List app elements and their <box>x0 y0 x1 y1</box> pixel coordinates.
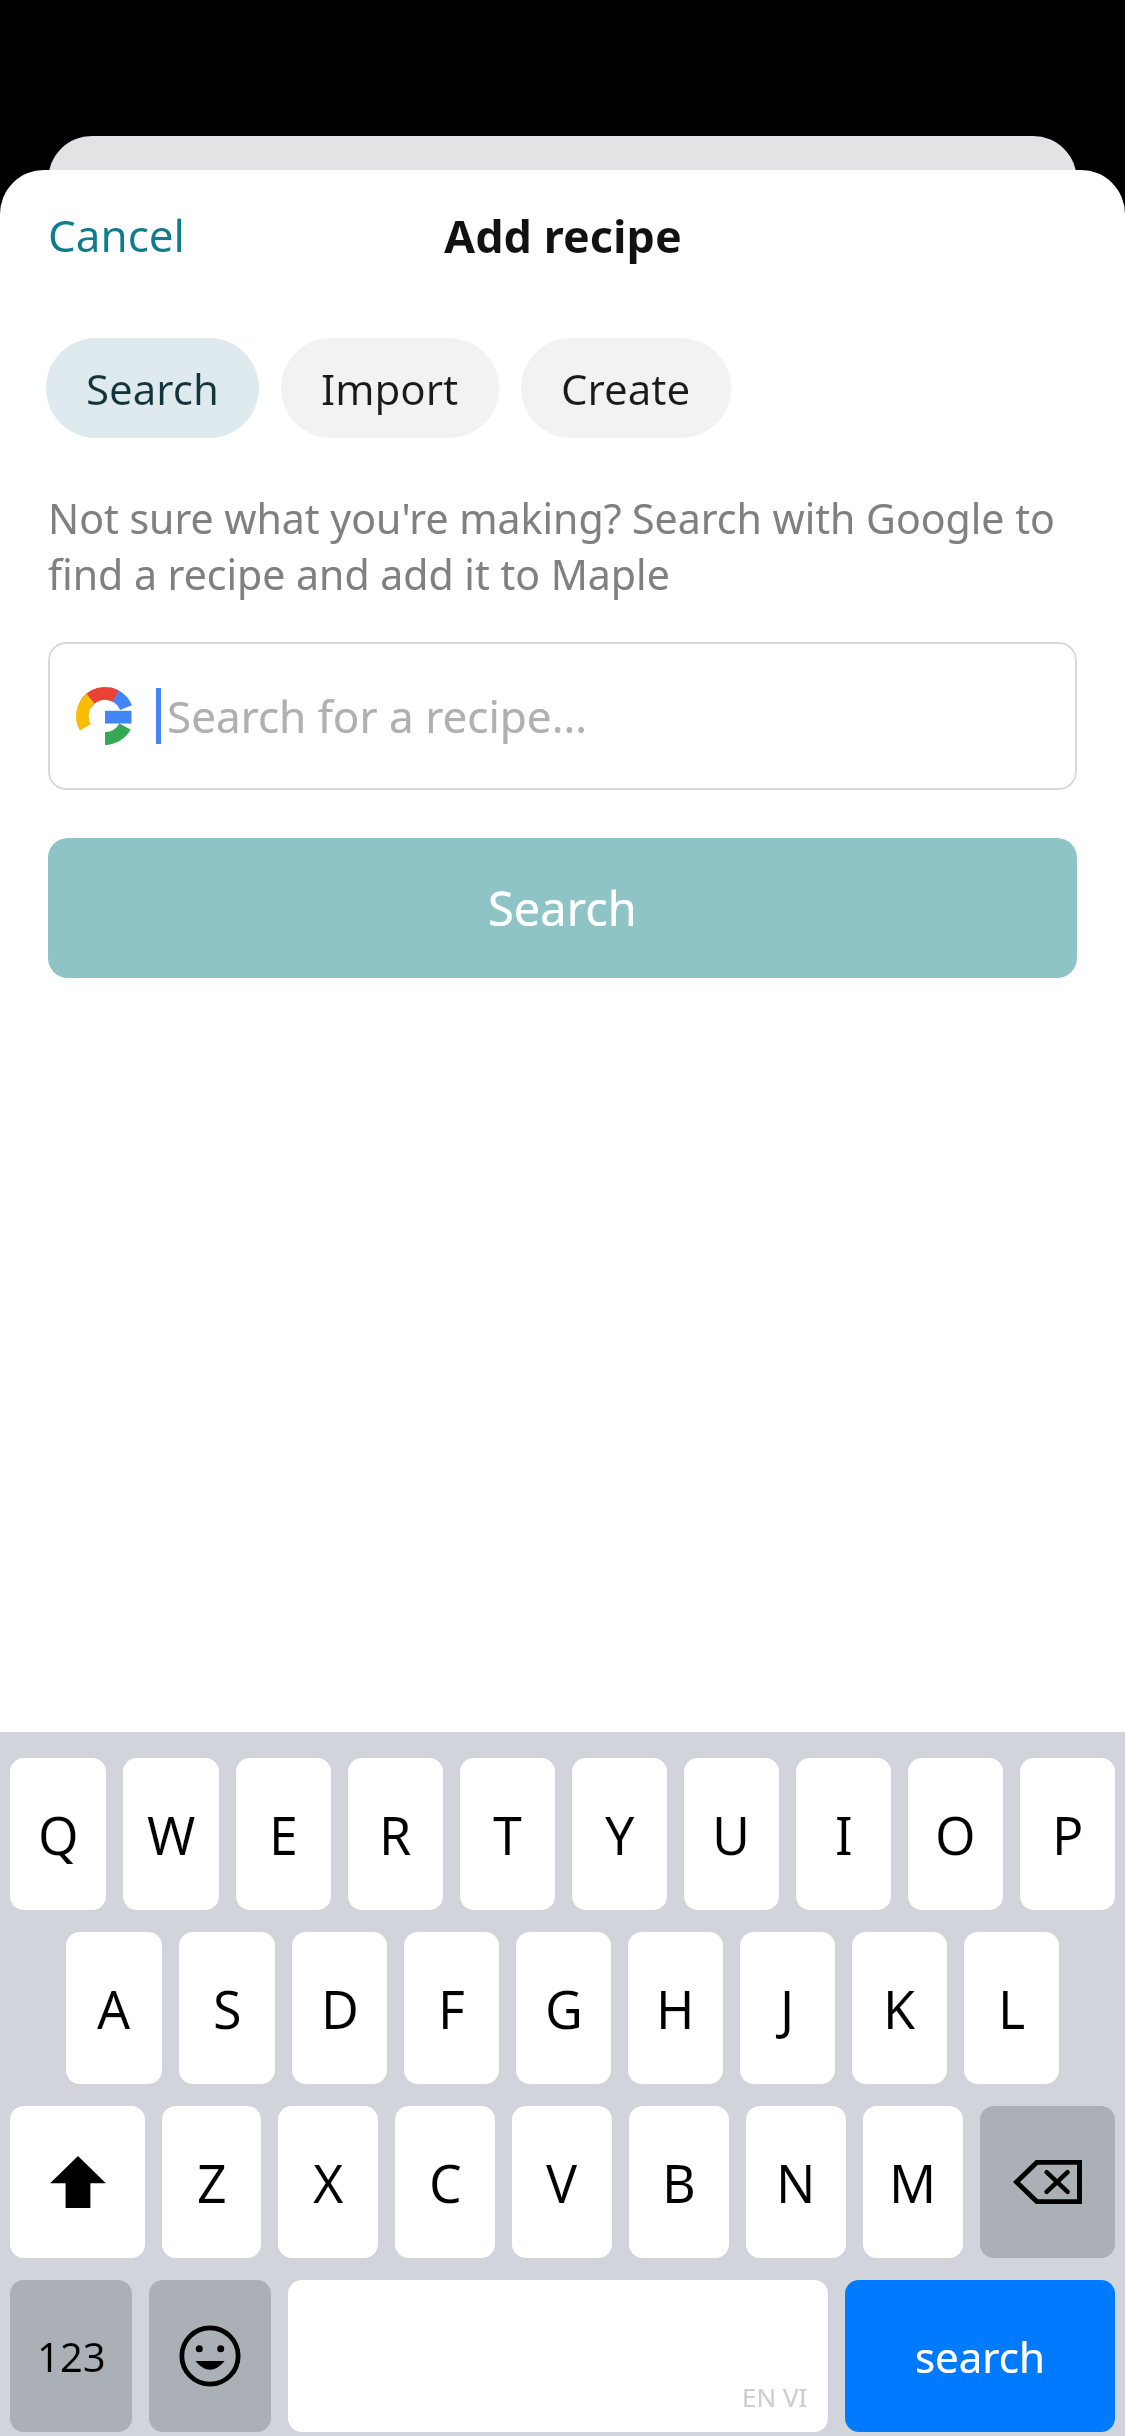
staticText: A <box>97 1973 131 2044</box>
button[interactable]: E <box>236 1758 331 1910</box>
staticText: Import <box>321 360 459 417</box>
button[interactable]: P <box>1020 1758 1115 1910</box>
button[interactable]: Import <box>281 338 499 438</box>
button[interactable]: T <box>460 1758 555 1910</box>
staticText: 123 <box>37 2329 106 2383</box>
button[interactable]: F <box>404 1932 499 2084</box>
button[interactable]: B <box>629 2106 729 2258</box>
button[interactable]: O <box>908 1758 1003 1910</box>
staticText: K <box>883 1973 916 2044</box>
staticText: V <box>546 2147 578 2218</box>
button[interactable]: Delete <box>980 2106 1115 2258</box>
staticText: N <box>776 2147 816 2218</box>
button[interactable]: EN VI <box>288 2280 828 2432</box>
staticText: Not sure what you're making? Search with… <box>48 490 1077 602</box>
staticText: F <box>438 1973 465 2044</box>
button[interactable]: Emoji <box>149 2280 271 2432</box>
button[interactable]: V <box>512 2106 612 2258</box>
button[interactable]: K <box>852 1932 947 2084</box>
staticText: O <box>935 1799 976 1870</box>
staticText: X <box>313 2147 344 2218</box>
staticText: EN VI <box>742 2379 808 2414</box>
staticText: Z <box>197 2147 227 2218</box>
button[interactable]: Create <box>521 338 731 438</box>
staticText: L <box>998 1973 1026 2044</box>
staticText: W <box>147 1799 196 1870</box>
staticText: B <box>662 2147 696 2218</box>
staticText: H <box>656 1973 695 2044</box>
staticText: E <box>269 1799 298 1870</box>
button[interactable]: Q <box>10 1758 106 1910</box>
button[interactable]: search <box>845 2280 1115 2432</box>
staticText: search <box>915 2328 1045 2385</box>
staticText: Q <box>38 1799 79 1870</box>
staticText: G <box>545 1973 583 2044</box>
button[interactable]: Shift <box>10 2106 145 2258</box>
button[interactable]: Search <box>46 338 259 438</box>
staticText: S <box>213 1973 242 2044</box>
staticText: Y <box>605 1799 635 1870</box>
button[interactable]: M <box>863 2106 963 2258</box>
button[interactable]: Cancel <box>30 195 203 275</box>
button[interactable]: S <box>179 1932 275 2084</box>
button[interactable]: G <box>516 1932 611 2084</box>
button[interactable]: U <box>684 1758 779 1910</box>
button[interactable]: 123 <box>10 2280 132 2432</box>
staticText: U <box>712 1799 751 1870</box>
staticText: Search <box>488 876 637 940</box>
staticText: R <box>379 1799 412 1870</box>
button[interactable]: D <box>292 1932 387 2084</box>
staticText: M <box>889 2147 937 2218</box>
button[interactable]: C <box>395 2106 495 2258</box>
staticText: Add recipe <box>444 205 682 266</box>
staticText: Create <box>561 360 691 417</box>
button[interactable]: Search <box>48 838 1077 978</box>
button[interactable]: Z <box>162 2106 261 2258</box>
staticText: P <box>1052 1799 1084 1870</box>
staticText: I <box>835 1799 853 1870</box>
button[interactable]: I <box>796 1758 891 1910</box>
staticText: Search for a recipe... <box>167 686 588 746</box>
button[interactable]: N <box>746 2106 846 2258</box>
button[interactable]: R <box>348 1758 443 1910</box>
button[interactable]: Y <box>572 1758 667 1910</box>
staticText: J <box>780 1973 795 2044</box>
button[interactable]: L <box>964 1932 1059 2084</box>
button[interactable]: J <box>740 1932 835 2084</box>
staticText: Cancel <box>48 205 185 265</box>
staticText: Search <box>86 360 219 417</box>
staticText: T <box>493 1799 522 1870</box>
button[interactable]: Search for a recipe... <box>48 642 1077 790</box>
button[interactable]: H <box>628 1932 723 2084</box>
button[interactable]: W <box>123 1758 219 1910</box>
button[interactable]: X <box>278 2106 378 2258</box>
button[interactable]: A <box>66 1932 162 2084</box>
staticText: D <box>321 1973 359 2044</box>
staticText: C <box>429 2147 462 2218</box>
